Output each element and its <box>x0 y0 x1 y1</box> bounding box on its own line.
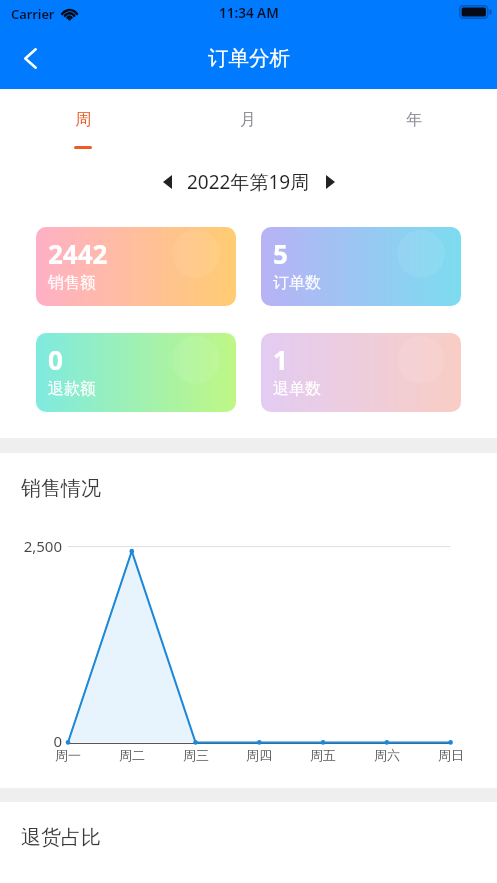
staticText: 销售情况 <box>21 476 101 501</box>
staticText: 周四 <box>229 747 289 763</box>
button[interactable]: 1 <box>261 333 461 412</box>
staticText: 周五 <box>293 747 353 763</box>
button[interactable]: 周 <box>0 89 165 151</box>
staticText: 5 <box>273 236 288 271</box>
button[interactable]: Back <box>7 35 53 81</box>
button[interactable]: Previous week <box>153 168 181 196</box>
staticText: 2442 <box>48 236 108 271</box>
button[interactable]: 年 <box>331 89 497 151</box>
staticText: 订单数 <box>273 273 321 293</box>
staticText: 0 <box>0 731 62 751</box>
button[interactable]: 5 <box>261 227 461 306</box>
staticText: 11:34 AM <box>219 4 279 22</box>
staticText: 周二 <box>102 747 162 763</box>
staticText: 退货占比 <box>21 825 101 850</box>
staticText: 周六 <box>357 747 417 763</box>
staticText: 退单数 <box>273 379 321 399</box>
staticText: 2,500 <box>0 536 62 556</box>
button[interactable]: 0 <box>36 333 236 412</box>
staticText: 销售额 <box>48 273 96 293</box>
staticText: 订单分析 <box>208 45 290 71</box>
staticText: Carrier <box>11 5 55 22</box>
staticText: 周一 <box>38 747 98 763</box>
staticText: 2022年第19周 <box>187 169 310 195</box>
staticText: 周三 <box>166 747 226 763</box>
staticText: 0 <box>48 342 63 377</box>
staticText: 周 <box>75 110 91 130</box>
staticText: 年 <box>406 110 422 130</box>
staticText: 月 <box>240 110 256 130</box>
staticText: 周日 <box>421 747 481 763</box>
button[interactable]: Next week <box>316 168 344 196</box>
button[interactable]: 月 <box>165 89 331 151</box>
staticText: 1 <box>273 342 288 377</box>
button[interactable]: 2442 <box>36 227 236 306</box>
staticText: 退款额 <box>48 379 96 399</box>
